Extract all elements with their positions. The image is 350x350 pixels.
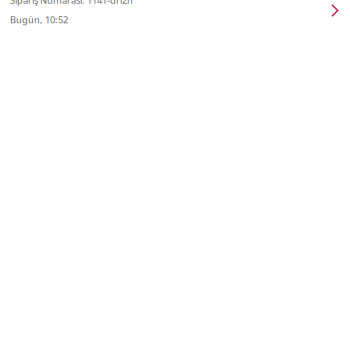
staticText: Bugün, 10:52 [10,13,68,26]
button[interactable]: Sipariş Numarası: 1141-drl2h [0,0,350,28]
staticText: Sipariş Numarası: 1141-drl2h [10,0,133,6]
